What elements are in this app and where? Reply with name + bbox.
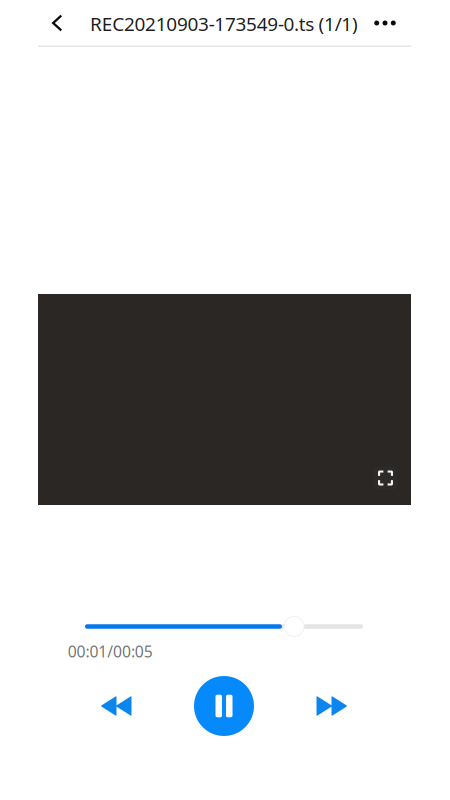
button[interactable]: More options <box>360 6 410 39</box>
button[interactable]: Back <box>39 2 75 44</box>
button[interactable]: Rewind <box>84 680 147 732</box>
button[interactable]: Pause <box>194 676 254 736</box>
staticText: 00:01/00:05 <box>68 641 153 662</box>
staticText: REC20210903-173549-0.ts (1/1) <box>90 11 358 36</box>
button[interactable]: Fast forward <box>300 680 363 732</box>
button[interactable]: Full screen <box>374 466 397 489</box>
